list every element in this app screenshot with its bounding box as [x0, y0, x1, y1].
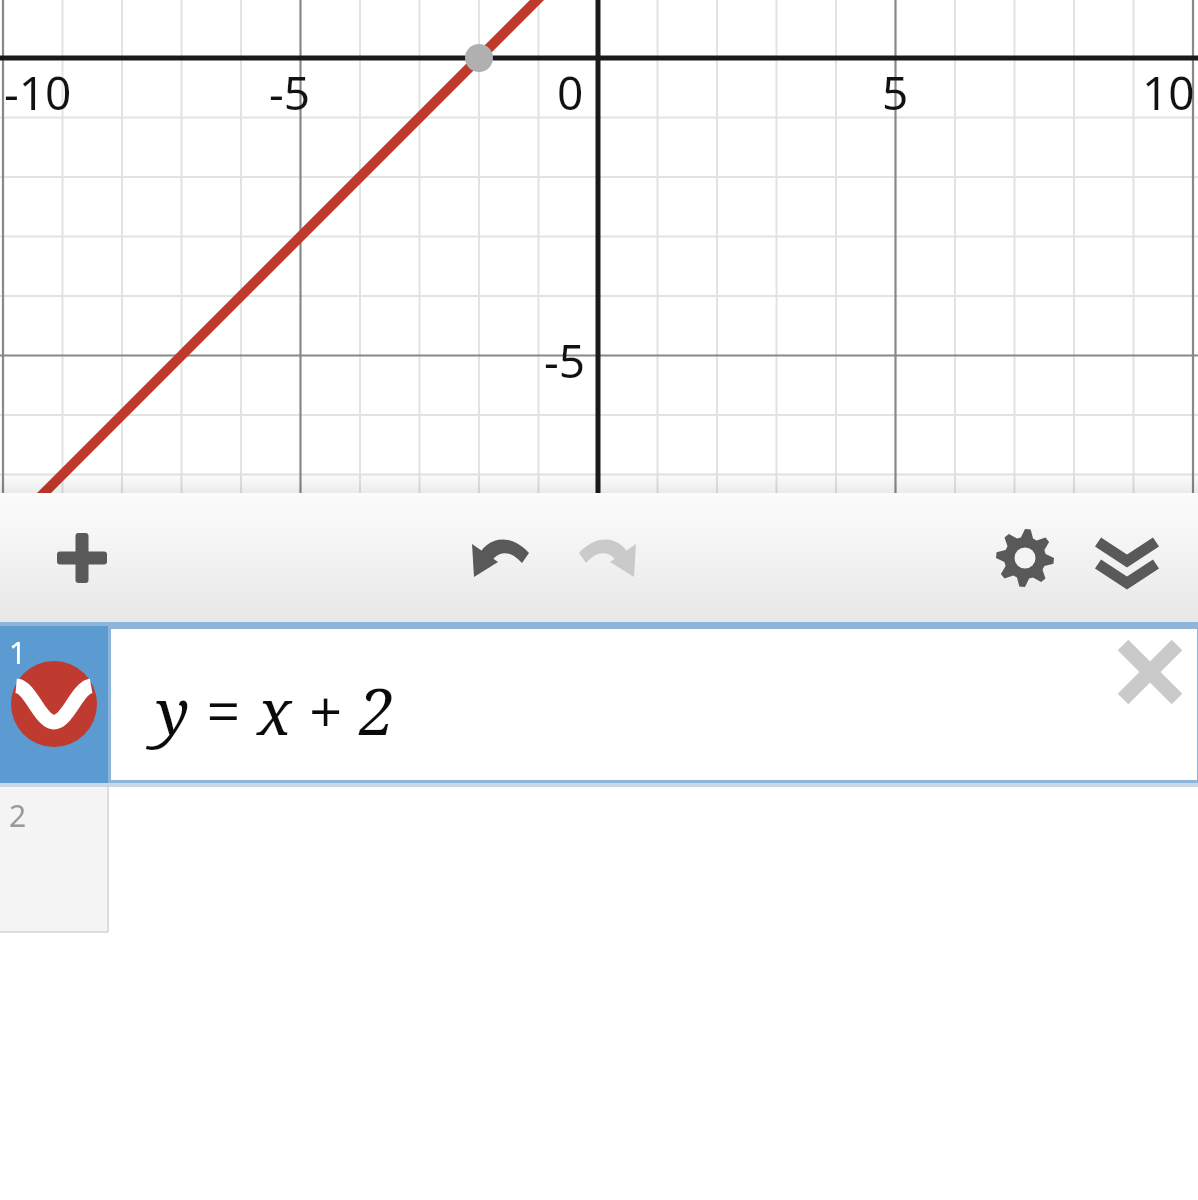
staticText: 10 — [1142, 61, 1195, 124]
staticText: 0 — [557, 61, 584, 124]
staticText: y = x + 2 — [156, 668, 395, 754]
button[interactable]: Collapse — [1087, 518, 1167, 598]
staticText: -10 — [4, 61, 72, 124]
button[interactable]: Undo — [462, 518, 542, 598]
button[interactable]: Row 2 — [0, 787, 108, 932]
staticText: 1 — [9, 632, 27, 673]
button[interactable]: Settings — [985, 518, 1065, 598]
staticText: -5 — [269, 61, 311, 124]
button[interactable]: Redo — [566, 518, 646, 598]
button[interactable]: Toggle visibility of expression 1 — [0, 626, 108, 783]
button[interactable]: Graphing view — [0, 0, 1198, 493]
button[interactable]: y = x + 2 — [108, 626, 1198, 783]
staticText: -5 — [544, 329, 586, 392]
staticText: 5 — [882, 61, 909, 124]
button[interactable]: Delete expression — [1112, 634, 1188, 710]
staticText: 2 — [9, 795, 27, 836]
button[interactable]: Add expression — [42, 518, 122, 598]
